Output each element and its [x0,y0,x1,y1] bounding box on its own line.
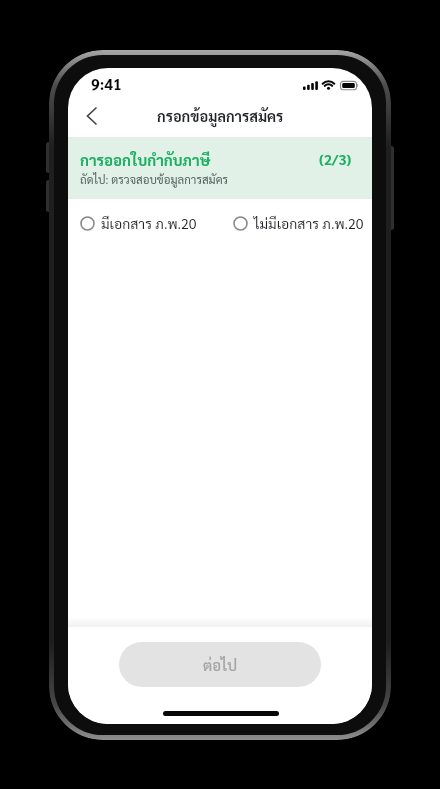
staticText: มีเอกสาร ภ.พ.20 [101,214,197,232]
button[interactable]: ไม่มีเอกสาร ภ.พ.20 [233,208,364,238]
staticText: กรอกข้อมูลการสมัคร [157,107,284,126]
staticText: การออกใบกำกับภาษี [80,150,211,169]
staticText: 9:41 [91,73,122,93]
staticText: (2/3) [319,150,352,168]
staticText: ถัดไป: ตรวจสอบข้อมูลการสมัคร [80,172,229,187]
button[interactable]: ต่อไป [119,642,321,687]
staticText: ไม่มีเอกสาร ภ.พ.20 [254,214,364,232]
button[interactable]: มีเอกสาร ภ.พ.20 [80,208,197,238]
staticText: ต่อไป [203,655,238,674]
button[interactable] [74,101,108,131]
